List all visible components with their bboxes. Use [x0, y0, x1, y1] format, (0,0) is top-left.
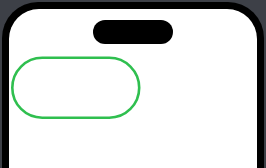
button[interactable]: Phone screen preview with highlighted el…	[0, 0, 266, 168]
